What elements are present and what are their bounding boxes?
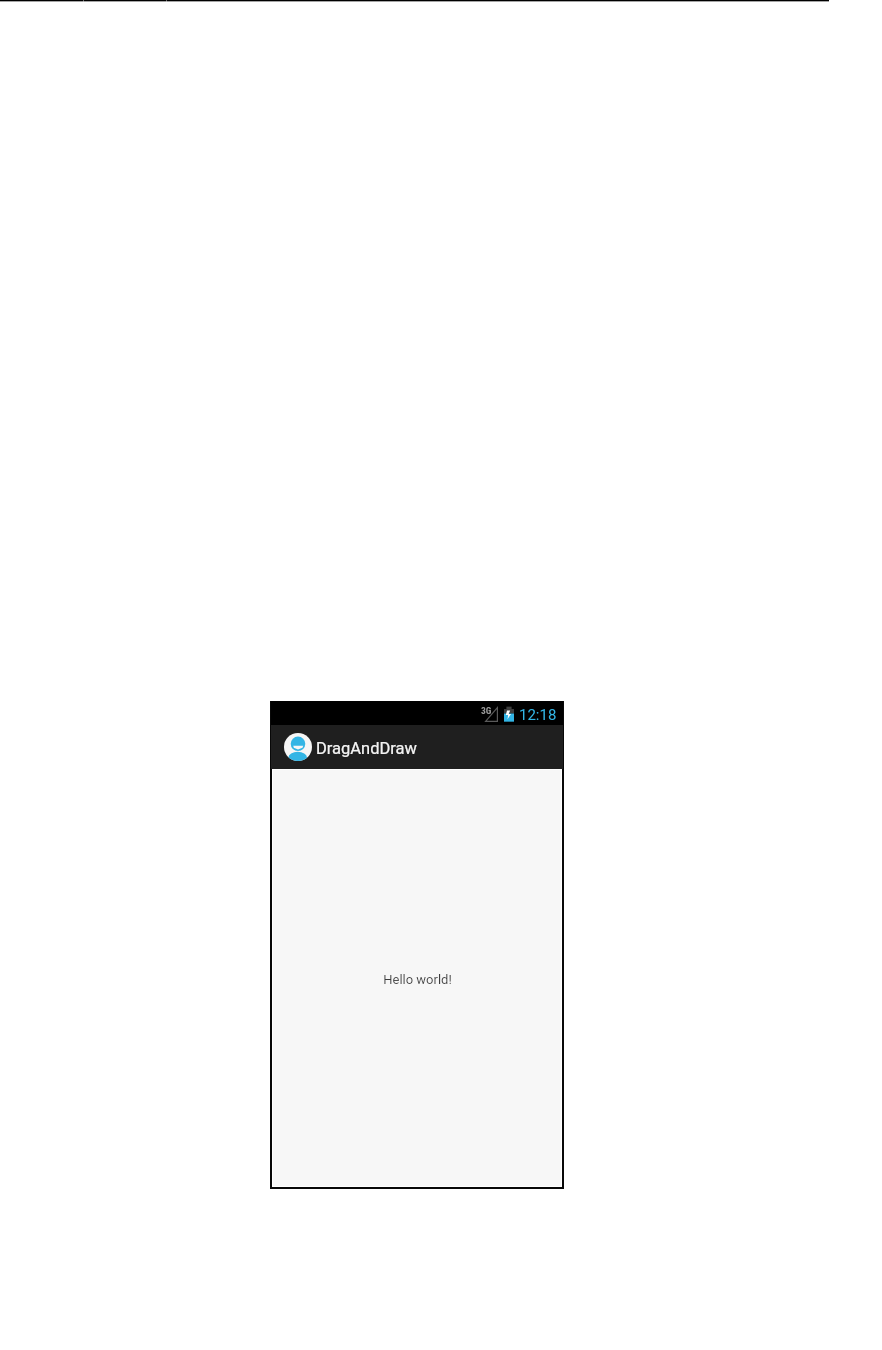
other: Mobile signal strength (485, 707, 498, 722)
staticText: 3G (481, 705, 492, 716)
other: DragAndDraw app icon (284, 733, 312, 761)
staticText: Hello world! (383, 972, 452, 987)
staticText: DragAndDraw (316, 739, 417, 758)
other: Battery charging (504, 706, 514, 722)
staticText: 12:18 (519, 706, 557, 724)
button[interactable]: Hello world! (273, 770, 561, 1186)
button[interactable]: DragAndDraw app icon (271, 725, 563, 769)
